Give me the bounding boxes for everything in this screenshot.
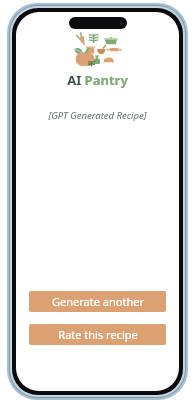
staticText: Generate another — [52, 294, 144, 309]
staticText: AI Pantry — [67, 71, 128, 89]
staticText: Rate this recipe — [58, 327, 138, 342]
button[interactable]: Rate this recipe — [29, 324, 166, 345]
staticText: [GPT Generated Recipe] — [48, 109, 147, 122]
button[interactable]: Generate another — [29, 291, 166, 312]
